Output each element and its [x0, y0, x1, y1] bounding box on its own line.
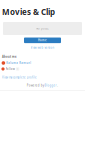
staticText: Home — [38, 38, 47, 42]
staticText: Powered by — [27, 84, 44, 87]
staticText: . — [57, 84, 58, 87]
staticText: View my complete profile — [2, 76, 37, 79]
staticText: Movies & Clip — [2, 7, 55, 17]
button[interactable]: Home — [24, 37, 61, 43]
staticText: No posts. — [36, 27, 49, 30]
staticText: Blogger — [44, 84, 56, 87]
staticText: About me — [2, 55, 17, 58]
staticText: Follow — [6, 67, 15, 71]
staticText: View web version — [30, 46, 54, 49]
button[interactable]: View my complete profile — [2, 76, 37, 79]
button[interactable]: View web version — [0, 46, 85, 50]
staticText: Kaluma Ramuel — [6, 61, 31, 65]
